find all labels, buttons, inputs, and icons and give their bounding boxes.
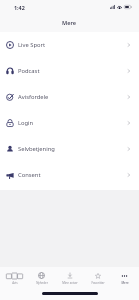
staticText: Podcast	[18, 67, 40, 75]
staticText: Selvbetjening	[18, 145, 55, 153]
staticText: Live Sport	[18, 41, 45, 49]
button[interactable]: Nyheder	[28, 272, 55, 285]
staticText: Mere	[121, 281, 129, 285]
staticText: Mere	[62, 19, 77, 27]
staticText: Login	[18, 119, 34, 127]
button[interactable]: Consent	[0, 162, 139, 188]
staticText: 1:42	[14, 4, 25, 11]
button[interactable]: Login	[0, 110, 139, 136]
button[interactable]: Avisfordele	[0, 84, 139, 110]
staticText: Consent	[18, 171, 41, 179]
staticText: Avis	[12, 281, 18, 285]
staticText: Avisfordele	[18, 93, 49, 101]
button[interactable]: Mine aviser	[56, 272, 83, 285]
button[interactable]: Podcast	[0, 58, 139, 84]
button[interactable]: Favoritter	[84, 272, 111, 285]
staticText: Mine aviser	[62, 281, 78, 285]
staticText: Nyheder	[36, 281, 48, 285]
button[interactable]: Live Sport	[0, 32, 139, 58]
button[interactable]: Mere	[111, 272, 138, 285]
staticText: Favoritter	[91, 281, 105, 285]
button[interactable]: Selvbetjening	[0, 136, 139, 162]
button[interactable]: Avis	[1, 272, 28, 285]
